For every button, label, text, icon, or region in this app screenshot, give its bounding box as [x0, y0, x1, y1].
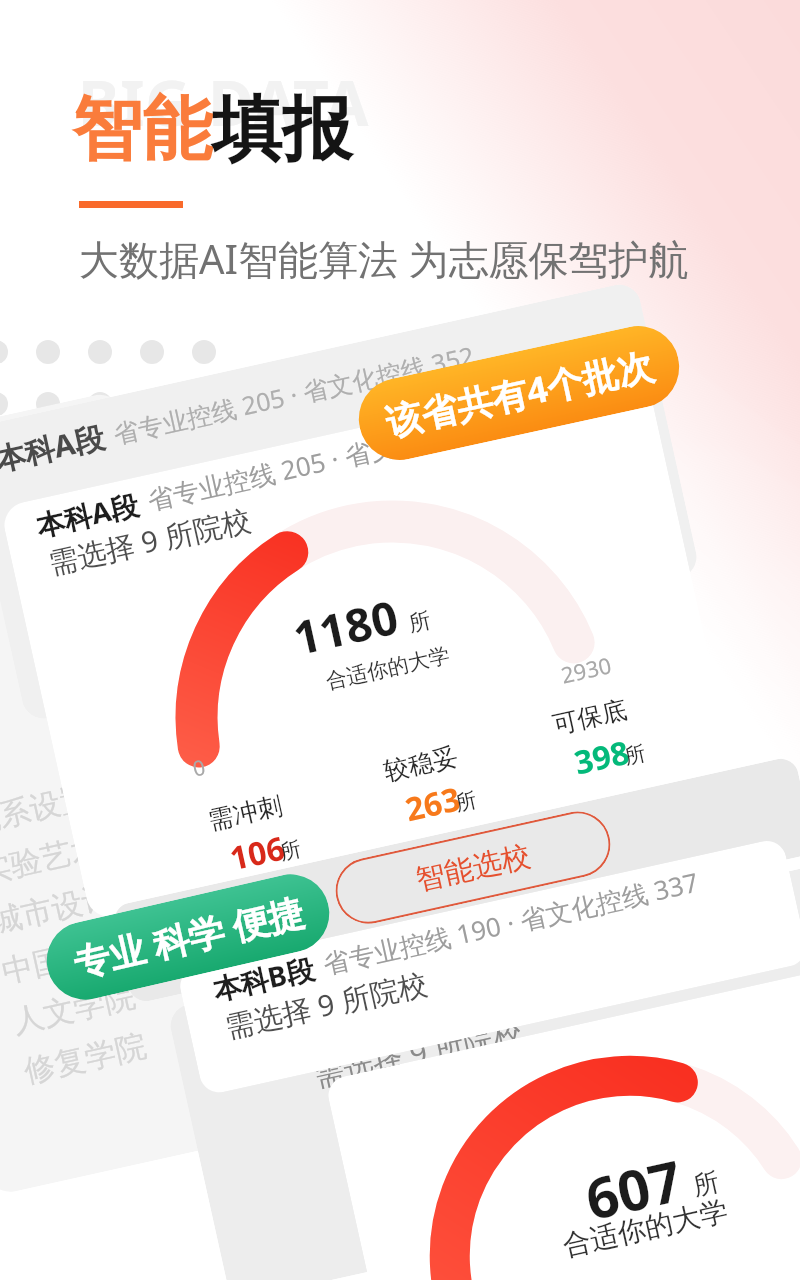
staticText: 人文学院 — [9, 976, 139, 1041]
staticText: 智能 — [72, 86, 212, 174]
staticText: 所 — [406, 606, 433, 638]
staticText: BIG DATA — [78, 60, 370, 144]
staticText: 中国画学院 — [0, 920, 158, 991]
staticText: 0 — [190, 752, 209, 783]
staticText: 需选择 9 所院校 — [221, 963, 431, 1046]
staticText: 城市设计学院 — [0, 863, 177, 942]
staticText: 智能选校 — [412, 837, 534, 899]
staticText: 2930 — [558, 649, 614, 689]
staticText: 需冲刺 — [205, 790, 285, 836]
button[interactable]: 本科A段 — [0, 365, 736, 921]
staticText: 较稳妥 — [381, 741, 461, 787]
staticText: 大数据AI智能算法 为志愿保驾护航 — [79, 231, 689, 286]
button[interactable]: 本科B段 — [176, 837, 800, 1096]
staticText: 需选择 9 所院校 — [310, 1009, 527, 1095]
staticText: 院系设置 — [0, 777, 95, 842]
button[interactable]: 该省共有4个批次 — [351, 318, 687, 468]
button[interactable]: 智能选校 — [329, 805, 617, 930]
staticText: 省专业控线 190 · 省文化控线 337 — [319, 864, 702, 982]
staticText: 实验艺术学院 — [0, 813, 166, 892]
staticText: 省专业控线 190 · 省文化控线 337 — [301, 931, 683, 1050]
staticText: 607 — [578, 1141, 689, 1236]
staticText: 所 — [453, 787, 479, 816]
staticText: 398 — [570, 730, 633, 785]
staticText: 该省共有4个批次 — [381, 340, 658, 446]
staticText: 合适你的大学 — [559, 1193, 731, 1264]
staticText: 所 — [622, 740, 648, 770]
staticText: 可保底 — [550, 694, 630, 740]
staticText: 修复学院 — [20, 1026, 150, 1091]
staticText: 106 — [226, 825, 289, 880]
staticText: 本科A段 — [0, 416, 108, 480]
staticText: 本科A段 — [33, 485, 142, 544]
staticText: 需选择 9 所院校 — [45, 499, 254, 583]
staticText: 1180 — [287, 585, 404, 669]
staticText: 263 — [401, 776, 464, 831]
staticText: 所 — [277, 836, 303, 866]
staticText: 所 — [690, 1165, 722, 1203]
staticText: 合适你的大学 — [323, 642, 452, 695]
staticText: 本科B段 — [209, 949, 318, 1008]
staticText: 省专业控线 205 · 省文化控线 352 — [144, 400, 527, 518]
staticText: 填报 — [212, 86, 352, 174]
staticText: 专业 科学 便捷 — [69, 887, 309, 988]
button[interactable]: 专业 科学 便捷 — [39, 867, 337, 1007]
staticText: 省专业控线 205 · 省文化控线 352 — [110, 338, 478, 451]
